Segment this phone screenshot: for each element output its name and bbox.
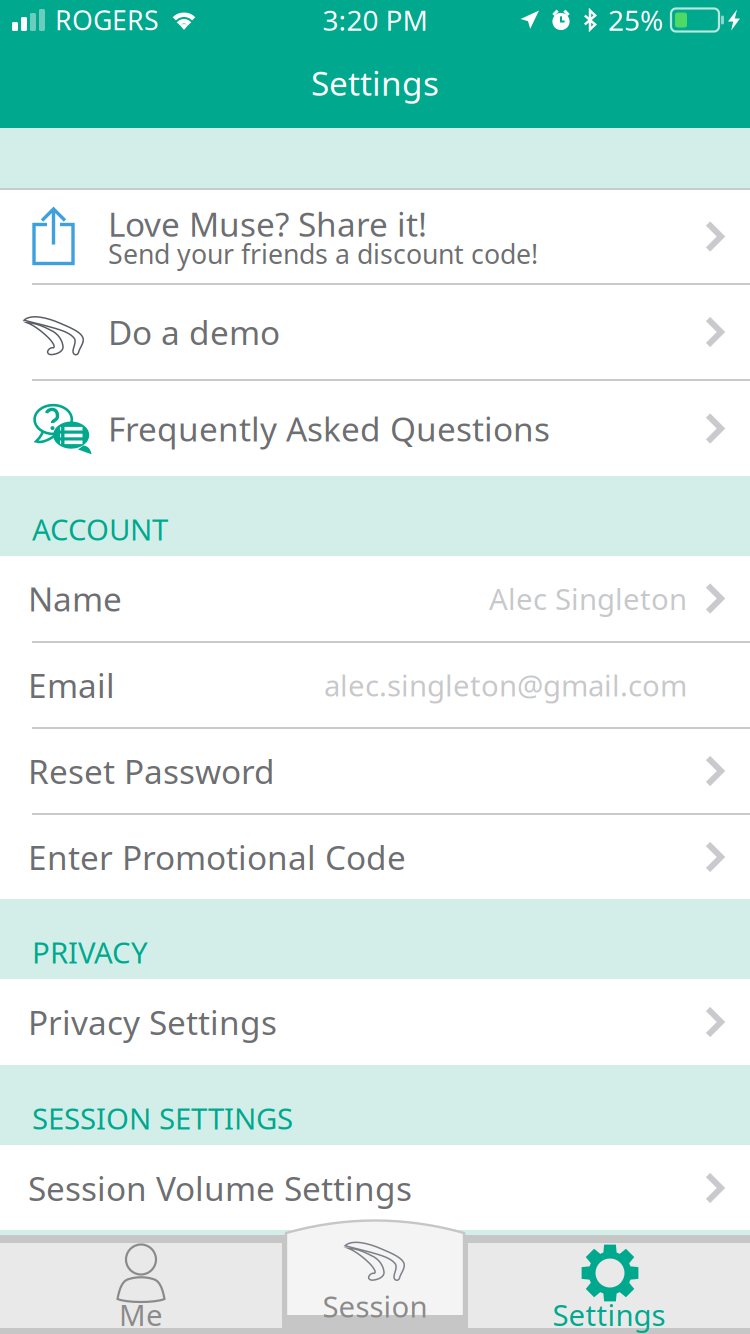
button[interactable]: Session	[285, 1217, 465, 1320]
button[interactable]: Do a demo	[0, 285, 750, 379]
staticText: Settings	[311, 61, 439, 105]
staticText: SESSION SETTINGS	[32, 1098, 293, 1137]
staticText: Reset Password	[28, 749, 275, 793]
staticText: Email	[28, 663, 115, 707]
staticText: Frequently Asked Questions	[108, 406, 550, 451]
button[interactable]: Me	[0, 1243, 282, 1328]
staticText: Send your friends a discount code!	[108, 236, 538, 271]
staticText: Name	[28, 576, 122, 621]
staticText: Enter Promotional Code	[28, 835, 406, 879]
staticText: Me	[119, 1295, 163, 1334]
staticText: PRIVACY	[32, 932, 148, 971]
staticText: ACCOUNT	[32, 509, 168, 548]
staticText: 3:20 PM	[322, 1, 427, 39]
button[interactable]: Name	[0, 556, 750, 641]
staticText: Settings	[552, 1295, 665, 1334]
staticText: Privacy Settings	[28, 1000, 277, 1044]
staticText: Session	[322, 1286, 427, 1325]
staticText: Love Muse? Share it!	[108, 202, 427, 246]
staticText: alec.singleton@gmail.com	[324, 665, 687, 704]
button[interactable]: Settings	[468, 1243, 750, 1328]
button[interactable]: Session Volume Settings	[0, 1145, 750, 1231]
staticText: Session Volume Settings	[28, 1166, 412, 1210]
button[interactable]: Email	[0, 643, 750, 727]
button[interactable]: Reset Password	[0, 729, 750, 813]
staticText: Do a demo	[108, 310, 280, 354]
button[interactable]: Privacy Settings	[0, 979, 750, 1065]
button[interactable]: Love Muse? Share it!	[0, 190, 750, 283]
button[interactable]: Enter Promotional Code	[0, 815, 750, 899]
staticText: Alec Singleton	[489, 579, 687, 618]
button[interactable]: Frequently Asked Questions	[0, 381, 750, 476]
staticText: 25%	[608, 1, 663, 39]
staticText: ROGERS	[55, 2, 159, 38]
